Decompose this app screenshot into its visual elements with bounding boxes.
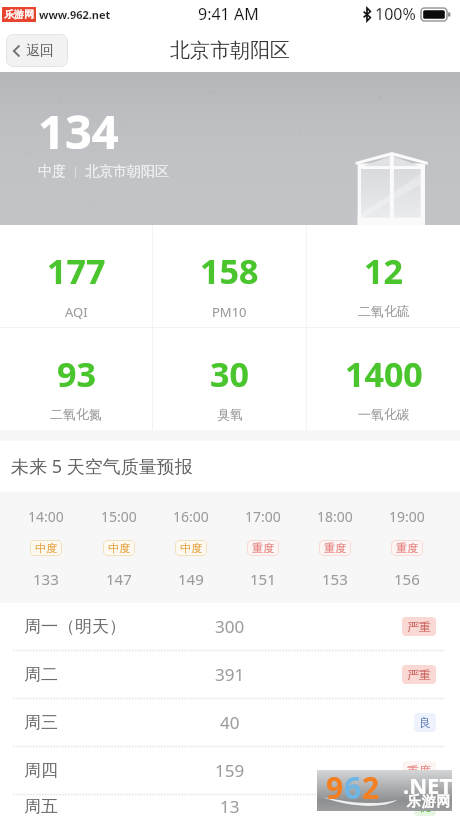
staticText: 147 <box>106 569 132 589</box>
staticText: 30 <box>210 351 249 397</box>
staticText: 151 <box>250 569 276 589</box>
staticText: 二氧化氮 <box>50 406 102 422</box>
staticText: 一氧化碳 <box>358 406 410 422</box>
staticText: 18:00 <box>317 507 353 526</box>
staticText: 2 <box>362 767 380 808</box>
staticText: 周五 <box>24 796 58 817</box>
staticText: 乐游网 <box>4 8 34 21</box>
staticText: 13 <box>220 795 240 818</box>
staticText: 重度 <box>324 541 346 555</box>
staticText: 134 <box>38 99 119 163</box>
staticText: 臭氧 <box>217 406 243 422</box>
staticText: 重度 <box>396 541 418 555</box>
button[interactable]: 返回 <box>6 34 68 67</box>
staticText: 16:00 <box>173 507 209 526</box>
staticText: 100% <box>375 3 416 25</box>
button[interactable]: 14:00 <box>9 492 82 603</box>
staticText: 二氧化硫 <box>358 303 410 319</box>
staticText: 158 <box>200 248 259 294</box>
staticText: 未来 5 天空气质量预报 <box>11 454 193 479</box>
staticText: 14:00 <box>28 507 64 526</box>
staticText: 153 <box>322 569 348 589</box>
staticText: 优 <box>419 799 431 814</box>
staticText: PM10 <box>212 303 247 321</box>
button[interactable]: 177 <box>0 225 152 327</box>
button[interactable]: 周四 <box>0 747 460 794</box>
button[interactable]: 19:00 <box>371 492 443 603</box>
staticText: 中度 <box>108 541 130 555</box>
staticText: 159 <box>215 759 245 782</box>
other: Air quality illustration <box>353 150 429 225</box>
staticText: 中度 <box>38 163 66 181</box>
button[interactable]: 17:00 <box>227 492 299 603</box>
staticText: 9:41 AM <box>198 3 259 25</box>
staticText: 9 <box>326 767 344 808</box>
staticText: 156 <box>394 569 420 589</box>
staticText: 北京市朝阳区 <box>85 163 169 181</box>
button[interactable]: 周一（明天） <box>0 603 460 650</box>
button[interactable]: 周二 <box>0 651 460 698</box>
staticText: 17:00 <box>245 507 281 526</box>
staticText: 周三 <box>24 712 58 733</box>
staticText: 周一（明天） <box>24 616 126 637</box>
staticText: 中度 <box>35 541 57 555</box>
button[interactable]: 周五 <box>0 795 460 818</box>
staticText: 严重 <box>407 619 431 634</box>
staticText: 149 <box>178 569 204 589</box>
staticText: 391 <box>215 663 245 686</box>
staticText: .NET <box>403 770 453 800</box>
staticText: 177 <box>47 248 106 294</box>
button[interactable]: 1400 <box>307 328 460 430</box>
button[interactable]: 周三 <box>0 699 460 746</box>
button[interactable]: 93 <box>0 328 152 430</box>
staticText: 重度 <box>407 763 431 778</box>
staticText: 周二 <box>24 664 58 685</box>
button[interactable]: 18:00 <box>299 492 371 603</box>
staticText: 133 <box>33 569 59 589</box>
staticText: 乐游网 <box>406 793 451 811</box>
button[interactable]: 16:00 <box>155 492 227 603</box>
staticText: 中度 <box>180 541 202 555</box>
staticText: 良 <box>419 715 431 730</box>
staticText: 40 <box>220 711 240 734</box>
staticText: 93 <box>57 351 96 397</box>
staticText: www.962.net <box>39 7 111 22</box>
button[interactable]: 12 <box>307 225 460 327</box>
staticText: 返回 <box>26 42 54 60</box>
staticText: 严重 <box>407 667 431 682</box>
button[interactable]: 30 <box>153 328 306 430</box>
button[interactable]: 158 <box>153 225 306 327</box>
staticText: AQI <box>65 303 88 321</box>
staticText: 19:00 <box>389 507 425 526</box>
button[interactable]: 15:00 <box>82 492 155 603</box>
staticText: 15:00 <box>101 507 137 526</box>
staticText: 12 <box>364 248 403 294</box>
staticText: 6 <box>344 767 362 808</box>
staticText: 300 <box>215 615 245 638</box>
staticText: 周四 <box>24 760 58 781</box>
staticText: 1400 <box>345 351 423 397</box>
staticText: 北京市朝阳区 <box>170 38 290 63</box>
staticText: 重度 <box>252 541 274 555</box>
